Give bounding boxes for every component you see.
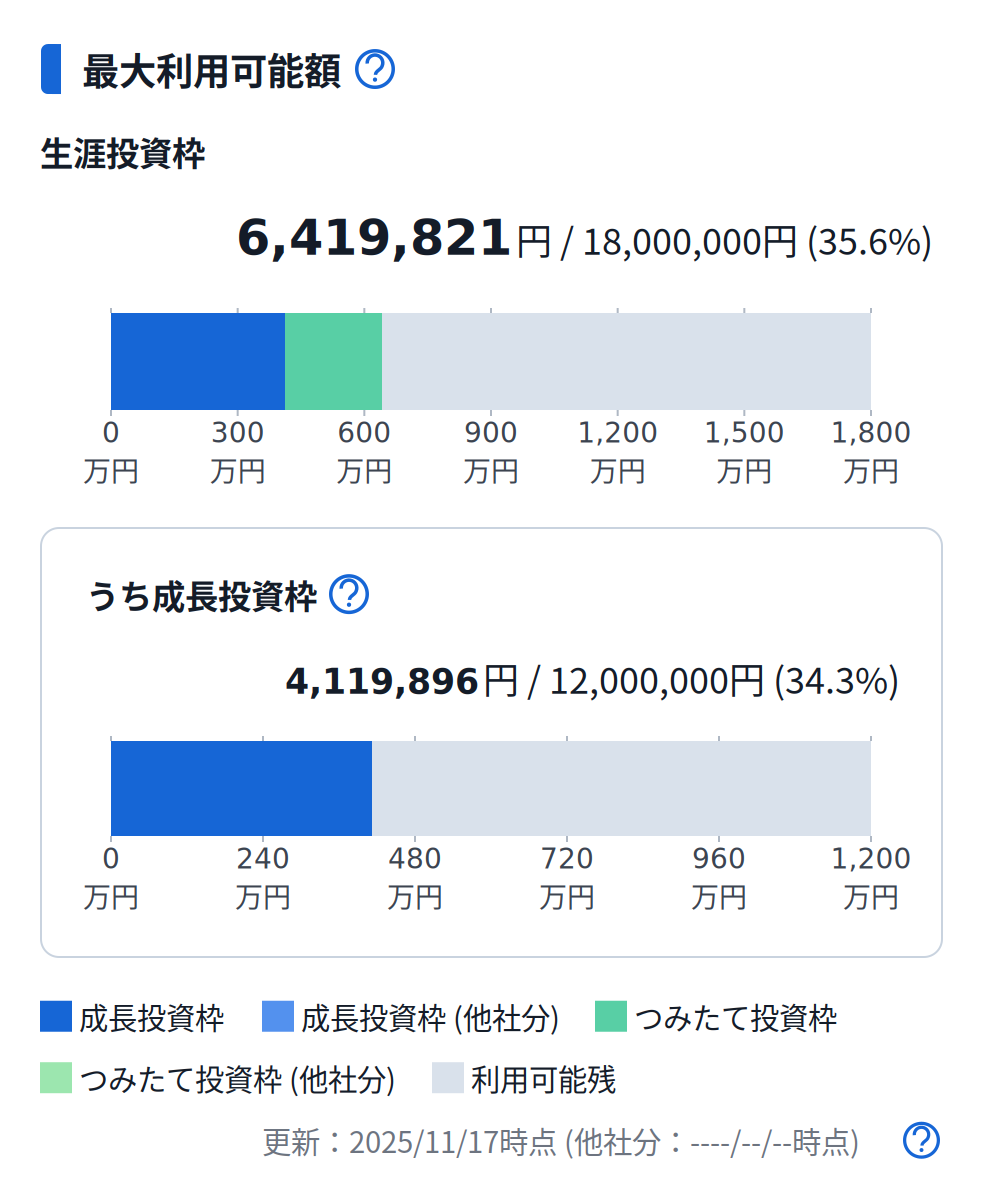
staticText: つみたて投資枠 [634, 995, 837, 1037]
staticText: 利用可能残 [471, 1056, 616, 1099]
staticText: 1,200 [577, 416, 658, 449]
staticText: 万円 [716, 449, 772, 489]
staticText: 更新：2025/11/17時点 (他社分：----/--/--時点) [262, 1119, 860, 1161]
staticText: 900 [464, 416, 518, 449]
staticText: 万円 [387, 875, 443, 915]
staticText: 240 [236, 842, 290, 875]
staticText: 600 [337, 416, 391, 449]
staticText: 万円 [843, 875, 899, 915]
staticText: 0 [102, 416, 120, 449]
staticText: 万円 [691, 875, 747, 915]
staticText: 万円 [336, 449, 392, 489]
staticText: 万円 [539, 875, 595, 915]
staticText: 万円 [463, 449, 519, 489]
staticText: 万円 [843, 449, 899, 489]
staticText: 万円 [590, 449, 646, 489]
staticText: つみたて投資枠 (他社分) [79, 1056, 396, 1099]
staticText: 万円 [83, 449, 139, 489]
staticText: 万円 [210, 449, 266, 489]
staticText: うち成長投資枠 [86, 570, 317, 618]
staticText: 4,119,896 [285, 662, 479, 702]
staticText: 成長投資枠 (他社分) [301, 995, 560, 1037]
staticText: 480 [388, 842, 442, 875]
staticText: 300 [211, 416, 265, 449]
staticText: 1,800 [830, 416, 911, 449]
button[interactable]: 更新日時についてのヘルプ [860, 1122, 940, 1159]
staticText: 960 [692, 842, 746, 875]
staticText: 1,200 [830, 842, 911, 875]
staticText: 成長投資枠 [79, 995, 224, 1037]
staticText: 万円 [235, 875, 291, 915]
staticText: 6,419,821 [236, 209, 512, 266]
staticText: 1,500 [704, 416, 785, 449]
staticText: 万円 [83, 875, 139, 915]
staticText: 最大利用可能額 [82, 42, 341, 96]
button[interactable]: 最大利用可能額 [41, 42, 395, 96]
staticText: 円 / 18,000,000円 (35.6%) [516, 213, 933, 265]
staticText: 円 / 12,000,000円 (34.3%) [483, 652, 900, 704]
button[interactable]: うち成長投資枠 [86, 570, 369, 618]
staticText: 720 [540, 842, 594, 875]
staticText: 0 [102, 842, 120, 875]
staticText: 生涯投資枠 [40, 127, 205, 175]
